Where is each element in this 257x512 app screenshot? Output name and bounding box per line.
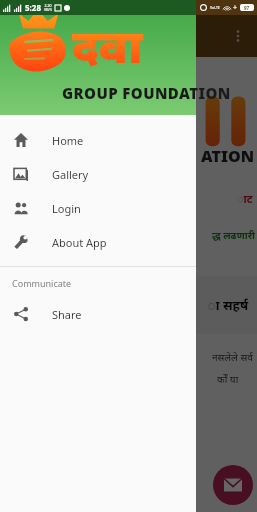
staticText: ाट [237,191,253,206]
staticText: Login [52,201,81,216]
button[interactable]: Gallery [0,157,196,191]
staticText: Share [52,307,82,322]
staticText: + [233,3,238,13]
staticText: ा सहर्ष [208,296,249,314]
staticText: Communicate [12,277,72,289]
staticText: Gallery [52,167,89,182]
button[interactable]: Share [0,297,196,331]
staticText: 2.20 KB/S [44,3,52,12]
staticText: 97 [244,5,250,11]
staticText: VoLTE [210,5,220,10]
staticText: Home [52,133,84,148]
staticText: About App [52,235,107,250]
button[interactable]: About App [0,225,196,259]
staticText: 5:28 [25,2,41,13]
staticText: ATION [201,145,255,167]
staticText: GROUP FOUNDATION [62,83,231,103]
button[interactable]: More options [227,25,249,47]
button[interactable]: Send email [213,465,253,505]
staticText: द्ध लढणारी [212,228,255,242]
staticText: दवा [72,14,143,77]
staticText: नसलेले सर्व [212,350,253,364]
staticText: र्कों या [217,372,239,386]
button[interactable]: Login [0,191,196,225]
button[interactable]: Home [0,123,196,157]
